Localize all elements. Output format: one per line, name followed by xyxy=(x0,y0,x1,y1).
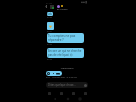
button[interactable]: Tu comptes ne pas répondre ? xyxy=(47,33,84,43)
staticText: Dites quelque chose... xyxy=(48,83,76,87)
staticText: 0:06 xyxy=(56,73,60,75)
staticText: 0:06 · Sourdine dans 1 h et 30 min xyxy=(46,76,78,79)
button[interactable]: Attach xyxy=(83,91,87,95)
staticText: 21:03 xyxy=(47,58,52,61)
staticText: 21:04 xyxy=(46,1,53,4)
staticText: 21:02 xyxy=(47,43,52,46)
button[interactable]: Camera xyxy=(71,91,75,95)
button[interactable]: Salut xyxy=(47,12,53,16)
staticText: Encore un qui ne cherche pas de réel quo… xyxy=(48,49,83,57)
button[interactable]: Emoji xyxy=(47,91,51,95)
staticText: Salut xyxy=(47,12,53,16)
staticText: 21:00 xyxy=(47,16,52,19)
button[interactable]: Back xyxy=(44,4,49,9)
staticText: 21:01 xyxy=(47,30,52,33)
button[interactable]: Back xyxy=(52,96,57,101)
staticText: et 2 autres xyxy=(57,8,68,11)
button[interactable]: Home xyxy=(65,96,70,101)
button[interactable] xyxy=(47,22,54,30)
staticText: Aujourd'hui xyxy=(44,67,90,70)
button[interactable]: Dites quelque chose... xyxy=(46,82,88,88)
button[interactable]: Recent apps xyxy=(77,96,82,101)
button[interactable]: 0:06 xyxy=(46,71,62,76)
staticText: Tu comptes ne pas répondre ? xyxy=(48,34,83,42)
staticText: ●● ▊ xyxy=(81,1,88,4)
button[interactable]: Send message xyxy=(84,84,87,87)
button[interactable]: Encore un qui ne cherche pas de réel quo… xyxy=(47,48,84,58)
button[interactable]: Participants xyxy=(49,4,55,10)
button[interactable]: Gallery xyxy=(59,91,63,95)
